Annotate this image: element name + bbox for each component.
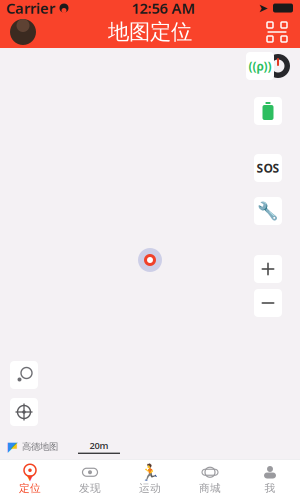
button[interactable]: ▾ <box>0 460 60 500</box>
button[interactable]: Battery <box>254 97 282 125</box>
staticText: ▾ <box>27 470 33 484</box>
button[interactable]: Profile <box>8 17 38 47</box>
staticText: Carrier <box>6 0 55 18</box>
button[interactable]: 🏃 <box>120 460 180 500</box>
button[interactable]: SOS <box>254 154 282 182</box>
button[interactable]: 我 <box>240 460 300 500</box>
staticText: ◤ <box>7 439 17 454</box>
staticText: 地图定位 <box>108 19 192 45</box>
button[interactable]: Zoom in <box>254 255 282 283</box>
staticText: 我 <box>264 482 275 495</box>
staticText: ➤ <box>258 1 268 15</box>
staticText: 商城 <box>199 482 221 495</box>
button[interactable]: Signal <box>246 52 274 80</box>
staticText: 🏃 <box>140 463 160 481</box>
button[interactable]: 商城 <box>180 460 240 500</box>
staticText: 定位 <box>19 482 41 495</box>
staticText: 发现 <box>79 482 101 495</box>
staticText: 12:56 AM <box>131 0 195 18</box>
button[interactable]: Track <box>10 361 38 389</box>
staticText: 高德地图 <box>22 441 58 452</box>
staticText: 🔧 <box>257 201 279 221</box>
staticText: 运动 <box>139 482 161 495</box>
staticText: ◢ <box>11 441 17 450</box>
staticText: 20m <box>89 439 108 452</box>
button[interactable]: Scan <box>262 17 292 47</box>
staticText: SOS <box>256 160 279 176</box>
button[interactable]: Settings <box>254 197 282 225</box>
staticText: ((ρ)) <box>248 58 271 74</box>
button[interactable]: 发现 <box>60 460 120 500</box>
button[interactable]: Zoom out <box>254 289 282 317</box>
button[interactable]: Locate me <box>10 398 38 426</box>
